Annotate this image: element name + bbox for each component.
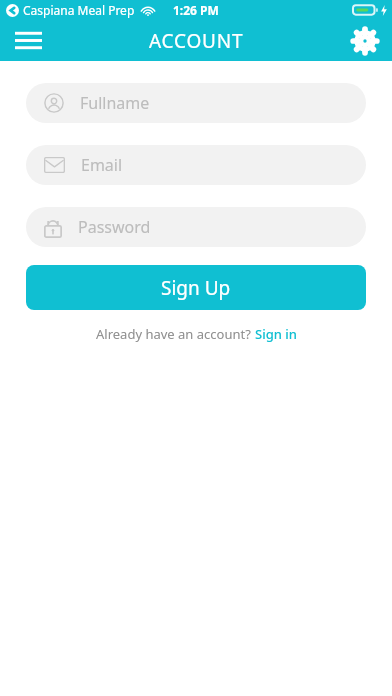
staticText: Sign in [255,325,297,343]
staticText: ACCOUNT [149,28,244,54]
button[interactable]: Sign Up [26,265,366,310]
button[interactable]: Fullname [26,83,366,123]
staticText: Sign Up [161,275,231,301]
button[interactable]: Settings [338,20,392,61]
button[interactable]: Menu [0,20,56,61]
button[interactable]: Email [26,145,366,185]
staticText: Already have an account? [96,325,255,343]
staticText: Email [81,154,123,176]
button[interactable]: Password [26,207,366,247]
staticText: Password [78,216,151,238]
button[interactable]: Sign in [255,325,297,343]
staticText: 1:26 PM [173,2,219,18]
staticText: Fullname [80,92,150,114]
staticText: Caspiana Meal Prep [23,2,135,18]
